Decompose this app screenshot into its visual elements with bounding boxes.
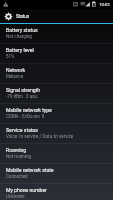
other: Settings: [4, 12, 13, 21]
staticText: 10:02: [99, 2, 110, 7]
staticText: Reliance: [6, 74, 24, 79]
staticText: 51%: [6, 54, 15, 59]
staticText: Mobile network state: [6, 167, 54, 173]
button[interactable]: My phone number: [0, 184, 113, 200]
button[interactable]: Battery level: [0, 44, 113, 63]
staticText: Signal strength: [6, 87, 41, 93]
staticText: Unknown: [6, 194, 25, 199]
button[interactable]: Mobile network state: [0, 164, 113, 183]
staticText: Status: [16, 14, 30, 19]
staticText: Not roaming: [6, 154, 31, 159]
staticText: Battery level: [6, 47, 34, 53]
staticText: Voice: In service / Data: In service: [6, 134, 74, 139]
button[interactable]: Service status: [0, 124, 113, 143]
staticText: Not charging: [6, 34, 32, 39]
button[interactable]: Signal strength: [0, 84, 113, 103]
button[interactable]: Settings: [0, 9, 113, 23]
button[interactable]: Battery status: [0, 24, 113, 43]
button[interactable]: Roaming: [0, 144, 113, 163]
button[interactable]: Mobile network type: [0, 104, 113, 123]
staticText: Service status: [6, 127, 39, 133]
staticText: Connected: [6, 174, 28, 179]
staticText: -79 dBm 2 asu: [6, 94, 37, 99]
staticText: Battery status: [6, 27, 38, 33]
staticText: Network: [6, 67, 26, 73]
staticText: Mobile network type: [6, 107, 52, 113]
staticText: My phone number: [6, 187, 47, 193]
staticText: Roaming: [6, 147, 27, 153]
button[interactable]: Network: [0, 64, 113, 83]
staticText: CDMA - EvDo rev. 0: [6, 114, 45, 119]
